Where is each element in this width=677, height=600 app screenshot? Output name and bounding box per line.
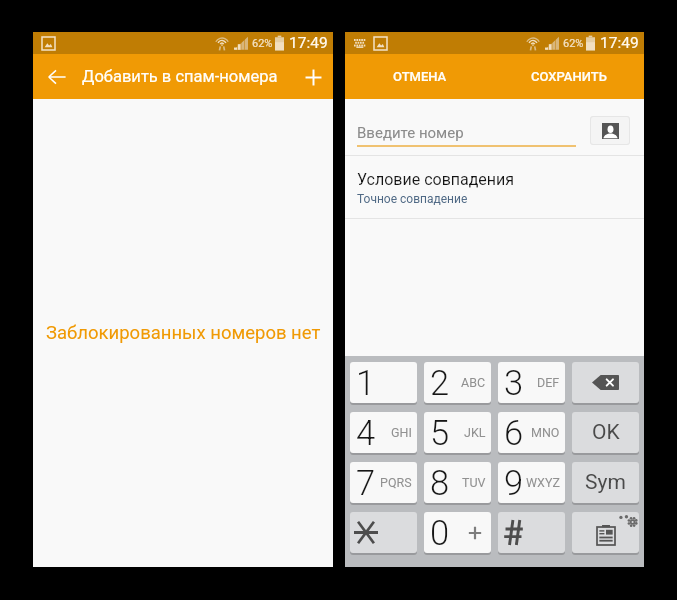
- staticText: Точное совпадение: [357, 192, 468, 206]
- button[interactable]: СОХРАНИТЬ: [494, 54, 644, 99]
- staticText: GHI: [391, 425, 412, 440]
- staticText: 0: [430, 513, 450, 553]
- button[interactable]: Sym: [572, 462, 639, 503]
- button[interactable]: [572, 362, 639, 403]
- staticText: 3: [504, 363, 524, 403]
- button[interactable]: 2: [424, 362, 491, 403]
- staticText: WXYZ: [526, 475, 560, 490]
- button[interactable]: Добавить: [291, 55, 335, 99]
- staticText: PQRS: [380, 475, 412, 490]
- button[interactable]: 0: [424, 512, 491, 553]
- staticText: 1: [356, 363, 376, 403]
- staticText: DEF: [537, 375, 560, 390]
- staticText: Sym: [585, 470, 626, 495]
- staticText: 5: [430, 413, 450, 453]
- button[interactable]: 3: [498, 362, 565, 403]
- staticText: MNO: [531, 425, 560, 440]
- staticText: 8: [430, 463, 450, 503]
- button[interactable]: 4: [350, 412, 417, 453]
- staticText: JKL: [464, 425, 486, 440]
- staticText: TUV: [462, 475, 486, 490]
- staticText: Введите номер: [357, 124, 464, 142]
- staticText: ОТМЕНА: [393, 69, 447, 84]
- button[interactable]: OK: [572, 412, 639, 453]
- button[interactable]: 1: [350, 362, 417, 403]
- button[interactable]: 5: [424, 412, 491, 453]
- staticText: Добавить в спам-номера: [82, 67, 278, 86]
- staticText: ABC: [461, 375, 486, 390]
- staticText: OK: [592, 420, 620, 445]
- button[interactable]: 6: [498, 412, 565, 453]
- staticText: 62%: [252, 37, 273, 50]
- button[interactable]: [350, 512, 417, 553]
- button[interactable]: [498, 512, 565, 553]
- staticText: Заблокированных номеров нет: [46, 322, 321, 344]
- button[interactable]: Выбрать контакт: [591, 117, 629, 144]
- staticText: 9: [504, 463, 524, 503]
- staticText: 17:49: [600, 34, 639, 52]
- button[interactable]: 9: [498, 462, 565, 503]
- button[interactable]: ОТМЕНА: [345, 54, 494, 99]
- button[interactable]: 7: [350, 462, 417, 503]
- staticText: 7: [356, 463, 376, 503]
- staticText: 62%: [563, 37, 584, 50]
- staticText: 17:49: [289, 34, 328, 52]
- staticText: Условие совпадения: [357, 170, 515, 189]
- button[interactable]: [572, 512, 639, 553]
- button[interactable]: 8: [424, 462, 491, 503]
- staticText: 4: [356, 413, 376, 453]
- button[interactable]: Условие совпадения: [345, 156, 644, 218]
- staticText: 6: [504, 413, 524, 453]
- button[interactable]: Назад: [35, 55, 79, 99]
- staticText: 2: [430, 363, 450, 403]
- staticText: СОХРАНИТЬ: [531, 69, 607, 84]
